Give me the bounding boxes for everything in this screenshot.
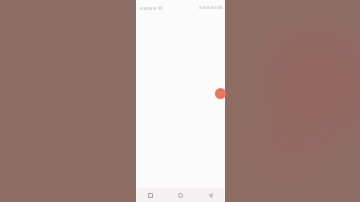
button[interactable]: Recent apps — [136, 188, 165, 202]
button[interactable]: Back — [195, 188, 225, 202]
button[interactable]: Home — [165, 188, 195, 202]
button[interactable]: Action — [215, 88, 226, 99]
